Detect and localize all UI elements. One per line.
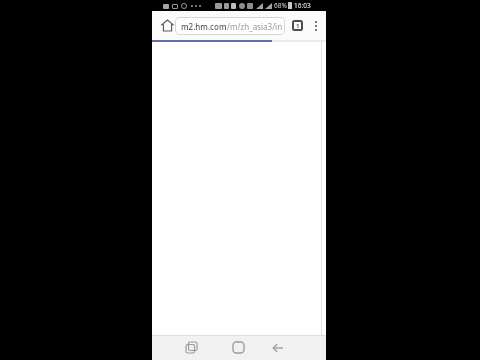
button[interactable]: 1	[292, 20, 303, 31]
button[interactable]	[185, 341, 198, 354]
button[interactable]	[312, 21, 320, 31]
staticText: /m/zh_asia3/in	[227, 21, 283, 32]
button[interactable]	[160, 18, 175, 33]
staticText: m2.hm.com	[181, 21, 227, 32]
button[interactable]	[271, 341, 284, 354]
button[interactable]	[232, 341, 245, 354]
staticText: 68%	[274, 1, 287, 10]
button[interactable]: m2.hm.com	[181, 17, 285, 35]
staticText: 16:03	[294, 1, 311, 10]
staticText: 1	[296, 22, 300, 30]
